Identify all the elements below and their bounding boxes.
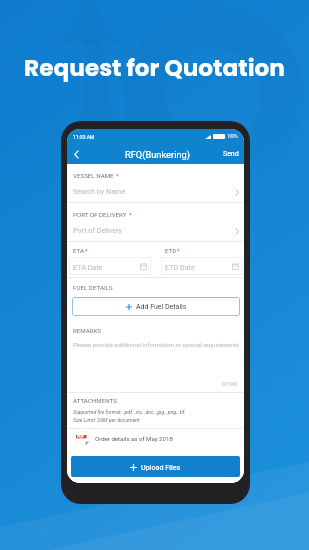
button[interactable]: Send (218, 147, 244, 161)
staticText: Order details as of May 2018 (95, 435, 173, 442)
staticText: Size Limit: 20M per document (73, 417, 140, 423)
staticText: * (129, 211, 132, 218)
staticText: 0/100 (222, 381, 237, 387)
staticText: Search by Name (73, 187, 126, 195)
button[interactable]: ETA (67, 242, 152, 277)
button[interactable]: Upload Files (71, 456, 240, 477)
button[interactable]: Back (69, 147, 83, 161)
staticText: * (177, 247, 180, 254)
staticText: Upload Files (141, 463, 181, 471)
button[interactable]: ETD (159, 242, 244, 277)
button[interactable]: VESSEL NAME (67, 164, 244, 203)
staticText: * (116, 172, 119, 179)
button[interactable]: PDF (67, 428, 244, 449)
staticText: ETA (73, 247, 85, 254)
button[interactable]: PORT OF DELIVERY (67, 203, 244, 242)
staticText: Request for Quotation (0, 52, 309, 84)
staticText: RFQ(Bunkering) (125, 149, 191, 160)
staticText: ETA Date (73, 263, 103, 271)
staticText: FUEL DETAILS (73, 284, 113, 291)
staticText: ETD Date (165, 263, 195, 271)
staticText: Send (223, 150, 239, 158)
staticText: Port of Delivery (73, 226, 122, 234)
staticText: * (85, 247, 88, 254)
staticText: Add Fuel Details (136, 303, 187, 311)
staticText: ATTACHMENTS (73, 397, 117, 404)
staticText: 11:33 AM (73, 134, 95, 140)
button[interactable]: Add Fuel Details (72, 297, 240, 316)
staticText: ETD (165, 247, 177, 254)
staticText: Please provide additional information or… (73, 341, 240, 348)
staticText: VESSEL NAME (73, 172, 114, 179)
staticText: REMARKS (73, 327, 102, 334)
staticText: PDF (77, 435, 84, 439)
staticText: 100% (227, 134, 238, 139)
staticText: PORT OF DELIVERY (73, 211, 127, 218)
staticText: Supported file format: .pdf, .xls, .doc,… (73, 409, 186, 415)
